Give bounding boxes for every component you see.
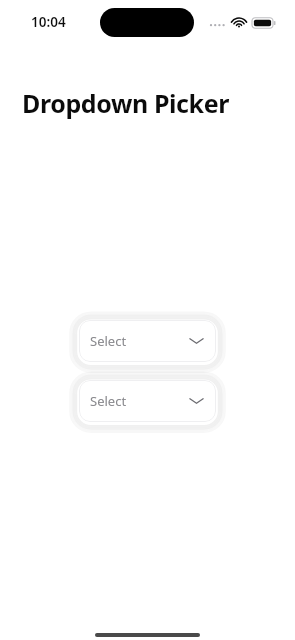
other: Open picker	[189, 396, 204, 406]
staticText: Dropdown Picker	[22, 86, 229, 120]
button[interactable]: Select	[79, 380, 216, 422]
staticText: 10:04	[31, 13, 66, 31]
button[interactable]: Select	[79, 320, 216, 362]
staticText: Select	[90, 332, 127, 350]
staticText: Select	[90, 392, 127, 410]
other: Open picker	[189, 336, 204, 346]
